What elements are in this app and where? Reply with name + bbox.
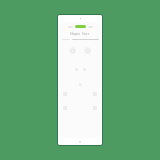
staticText: Shopin bbox=[70, 32, 80, 36]
button[interactable]: Category two bbox=[84, 47, 91, 54]
button[interactable] bbox=[75, 25, 86, 28]
staticText: Store bbox=[82, 32, 90, 36]
button[interactable]: Category one bbox=[69, 47, 76, 54]
